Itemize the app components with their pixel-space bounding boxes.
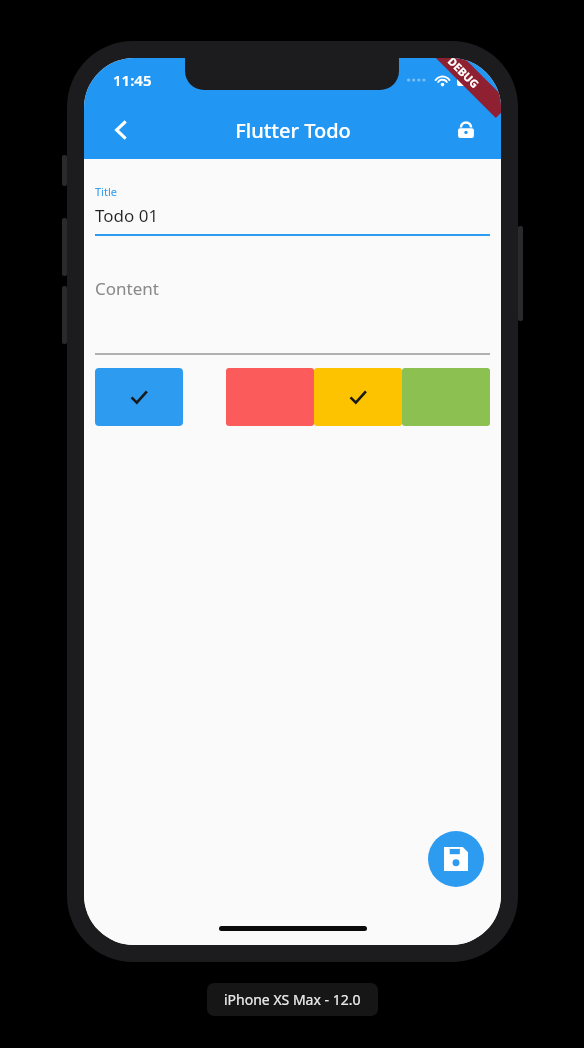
button[interactable]: Save bbox=[428, 831, 484, 887]
button[interactable]: Back bbox=[98, 107, 144, 153]
button[interactable]: Yellow bbox=[314, 368, 402, 426]
button[interactable]: Todo 01 bbox=[95, 203, 490, 227]
staticText: Todo 01 bbox=[95, 204, 159, 227]
button[interactable]: Red bbox=[226, 368, 314, 426]
staticText: Content bbox=[95, 277, 159, 300]
button[interactable]: Green bbox=[402, 368, 490, 426]
staticText: Flutter Todo bbox=[235, 117, 351, 144]
staticText: DEBUG bbox=[445, 58, 482, 91]
button[interactable]: Selected colour blue bbox=[95, 368, 183, 426]
staticText: 11:45 bbox=[113, 70, 152, 90]
staticText: Title bbox=[95, 184, 117, 199]
staticText: iPhone XS Max - 12.0 bbox=[224, 990, 361, 1009]
button[interactable]: Content bbox=[95, 277, 490, 353]
button[interactable]: Lock bbox=[443, 107, 489, 153]
